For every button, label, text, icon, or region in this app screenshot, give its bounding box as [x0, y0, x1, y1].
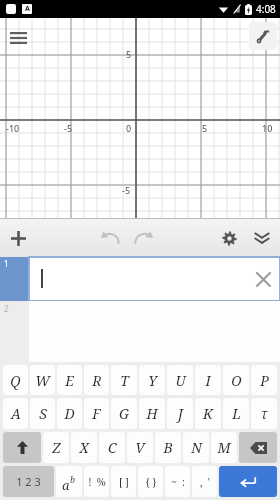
button[interactable]: J: [167, 398, 193, 429]
button[interactable]: A: [3, 398, 28, 429]
button[interactable]: a: [56, 466, 82, 497]
staticText: G: [119, 404, 129, 423]
staticText: 5: [126, 48, 132, 60]
staticText: H: [146, 404, 158, 423]
button[interactable]: Q: [3, 365, 28, 395]
staticText: ~ :: [171, 475, 185, 489]
staticText: T: [120, 371, 129, 390]
button[interactable]: Enter: [219, 466, 277, 497]
staticText: , ': [200, 475, 210, 489]
button[interactable]: 1: [0, 257, 280, 301]
button[interactable]: L: [223, 398, 249, 429]
staticText: W: [35, 371, 50, 390]
button[interactable]: M: [211, 432, 237, 463]
button[interactable]: τ: [251, 398, 277, 429]
button[interactable]: Undo: [99, 226, 123, 250]
button[interactable]: 2: [0, 301, 280, 362]
button[interactable]: Clear expression: [252, 268, 274, 290]
staticText: -5: [122, 184, 131, 196]
button[interactable]: K: [195, 398, 221, 429]
button[interactable]: F: [84, 398, 109, 429]
staticText: τ: [260, 404, 268, 423]
staticText: -5: [64, 122, 73, 134]
staticText: P: [260, 371, 269, 390]
staticText: L: [232, 404, 241, 423]
button[interactable]: Shift: [3, 432, 41, 463]
button[interactable]: { }: [138, 466, 163, 497]
button[interactable]: Backspace: [239, 432, 277, 463]
staticText: O: [231, 371, 242, 390]
button[interactable]: P: [251, 365, 277, 395]
button[interactable]: D: [57, 398, 82, 429]
button[interactable]: 1 2 3: [3, 466, 54, 497]
staticText: 1: [4, 258, 9, 269]
button[interactable]: Collapse keyboard: [249, 225, 275, 251]
staticText: E: [65, 371, 74, 390]
staticText: M: [217, 438, 231, 457]
staticText: 2: [4, 303, 9, 314]
button[interactable]: V: [127, 432, 153, 463]
staticText: Z: [52, 438, 61, 457]
staticText: I: [205, 371, 211, 390]
staticText: F: [92, 404, 101, 423]
button[interactable]: S: [30, 398, 55, 429]
staticText: C: [108, 438, 117, 457]
staticText: b: [70, 473, 76, 485]
staticText: N: [191, 438, 202, 457]
staticText: A: [11, 404, 21, 423]
staticText: 0: [126, 122, 132, 134]
staticText: X: [79, 438, 89, 457]
staticText: { }: [145, 475, 157, 489]
button[interactable]: I: [195, 365, 221, 395]
staticText: Q: [10, 371, 21, 390]
button[interactable]: R: [84, 365, 109, 395]
staticText: V: [135, 438, 145, 457]
button[interactable]: C: [99, 432, 125, 463]
button[interactable]: W: [30, 365, 55, 395]
staticText: 1 2 3: [16, 474, 41, 489]
button[interactable]: Add expression: [6, 226, 30, 250]
button[interactable]: E: [57, 365, 82, 395]
staticText: a: [62, 476, 70, 494]
button[interactable]: X: [71, 432, 97, 463]
staticText: 4:08: [256, 2, 276, 16]
button[interactable]: U: [167, 365, 193, 395]
staticText: -10: [6, 122, 20, 134]
staticText: S: [39, 404, 47, 423]
button[interactable]: Settings: [216, 225, 242, 251]
staticText: A: [25, 4, 30, 14]
button[interactable]: N: [183, 432, 209, 463]
button[interactable]: Menu: [6, 26, 30, 50]
button[interactable]: [ ]: [111, 466, 136, 497]
staticText: D: [64, 404, 75, 423]
staticText: U: [175, 371, 186, 390]
button[interactable]: H: [139, 398, 165, 429]
staticText: Y: [148, 371, 157, 390]
button[interactable]: B: [155, 432, 181, 463]
staticText: J: [178, 404, 183, 423]
button[interactable]: T: [111, 365, 137, 395]
staticText: B: [163, 438, 173, 457]
staticText: ! %: [88, 475, 106, 489]
staticText: [ ]: [119, 475, 129, 489]
button[interactable]: O: [223, 365, 249, 395]
button[interactable]: ! %: [84, 466, 109, 497]
button[interactable]: Z: [43, 432, 69, 463]
staticText: 10: [262, 122, 273, 134]
staticText: R: [92, 371, 102, 390]
button[interactable]: Y: [139, 365, 165, 395]
button[interactable]: Redo: [131, 226, 155, 250]
button[interactable]: G: [111, 398, 137, 429]
button[interactable]: ~ :: [165, 466, 190, 497]
button[interactable]: Graph settings: [249, 22, 277, 50]
staticText: K: [203, 404, 213, 423]
button[interactable]: , ': [192, 466, 217, 497]
staticText: 5: [202, 122, 208, 134]
